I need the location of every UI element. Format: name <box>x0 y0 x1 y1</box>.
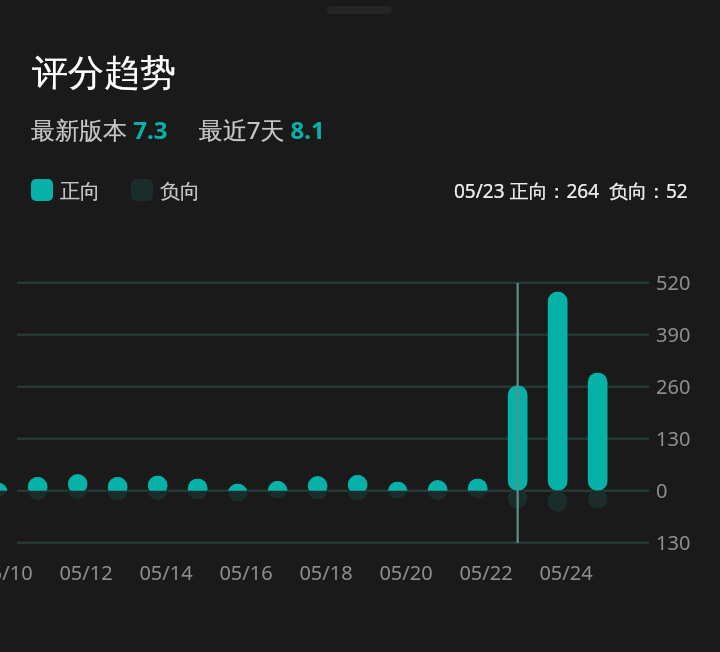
staticText: 05/22 <box>446 559 526 586</box>
staticText: 130 <box>656 529 691 556</box>
staticText: 05/18 <box>286 559 366 586</box>
button[interactable]: 正向 <box>31 179 100 201</box>
button[interactable]: 负向 <box>131 179 200 201</box>
staticText: 05/16 <box>206 559 286 586</box>
staticText: 130 <box>656 425 691 452</box>
staticText: 520 <box>656 269 691 296</box>
staticText: 05/24 <box>526 559 606 586</box>
staticText: 05/10 <box>0 559 46 586</box>
staticText: 0 <box>656 477 668 504</box>
staticText: 最新版本 7.3 最近7天 8.1 <box>31 113 325 146</box>
staticText: 正向 <box>60 179 100 201</box>
staticText: 390 <box>656 321 691 348</box>
staticText: 05/23 正向：264 负向：52 <box>454 178 688 204</box>
staticText: 260 <box>656 373 691 400</box>
staticText: 评分趋势 <box>32 50 176 95</box>
staticText: 05/12 <box>46 559 126 586</box>
other: Rating trend chart <box>0 0 720 652</box>
staticText: 05/14 <box>126 559 206 586</box>
staticText: 05/20 <box>366 559 446 586</box>
staticText: 负向 <box>160 179 200 201</box>
